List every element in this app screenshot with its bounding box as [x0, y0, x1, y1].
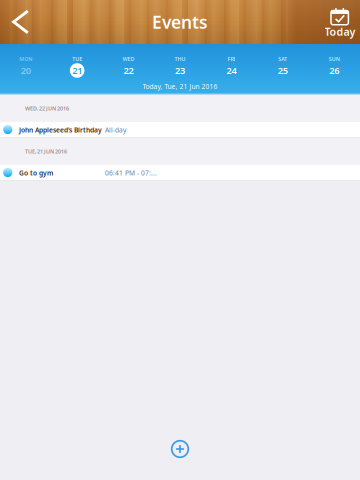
button[interactable]: FRI [206, 44, 257, 78]
staticText: John Appleseed's Birthday [19, 125, 102, 134]
staticText: Events [152, 10, 208, 33]
staticText: WED, 22 JUN 2016 [25, 105, 69, 112]
staticText: 20 [21, 64, 31, 77]
staticText: 22 [124, 64, 134, 77]
staticText: FRI [227, 55, 235, 63]
staticText: Go to gym [19, 168, 53, 177]
staticText: 23 [175, 64, 185, 77]
button[interactable]: SAT [257, 44, 308, 78]
button[interactable]: WED [103, 44, 154, 78]
staticText: 06:41 PM - 07:... [105, 168, 157, 177]
staticText: THU [174, 55, 185, 63]
button[interactable]: SUN [309, 44, 360, 78]
staticText: 26 [329, 64, 339, 77]
button[interactable]: Back [0, 0, 44, 44]
staticText: WED [123, 55, 135, 63]
button[interactable]: Today [320, 0, 360, 44]
staticText: Today, Tue, 21 Jun 2016 [142, 82, 217, 91]
staticText: MON [19, 55, 32, 63]
staticText: 24 [226, 64, 236, 77]
button[interactable]: John Appleseed's Birthday [0, 121, 360, 137]
staticText: 25 [278, 64, 288, 77]
staticText: 21 [72, 64, 82, 77]
button[interactable]: Add event [163, 432, 197, 466]
staticText: SUN [329, 55, 340, 63]
staticText: TUE [72, 55, 82, 63]
button[interactable]: MON [0, 44, 51, 78]
staticText: Today [324, 24, 355, 39]
staticText: TUE, 21 JUN 2016 [25, 148, 67, 155]
button[interactable]: THU [154, 44, 206, 78]
staticText: SAT [278, 55, 287, 63]
button[interactable]: TUE [51, 44, 103, 78]
staticText: All-day [105, 125, 126, 134]
button[interactable]: Go to gym [0, 164, 360, 180]
